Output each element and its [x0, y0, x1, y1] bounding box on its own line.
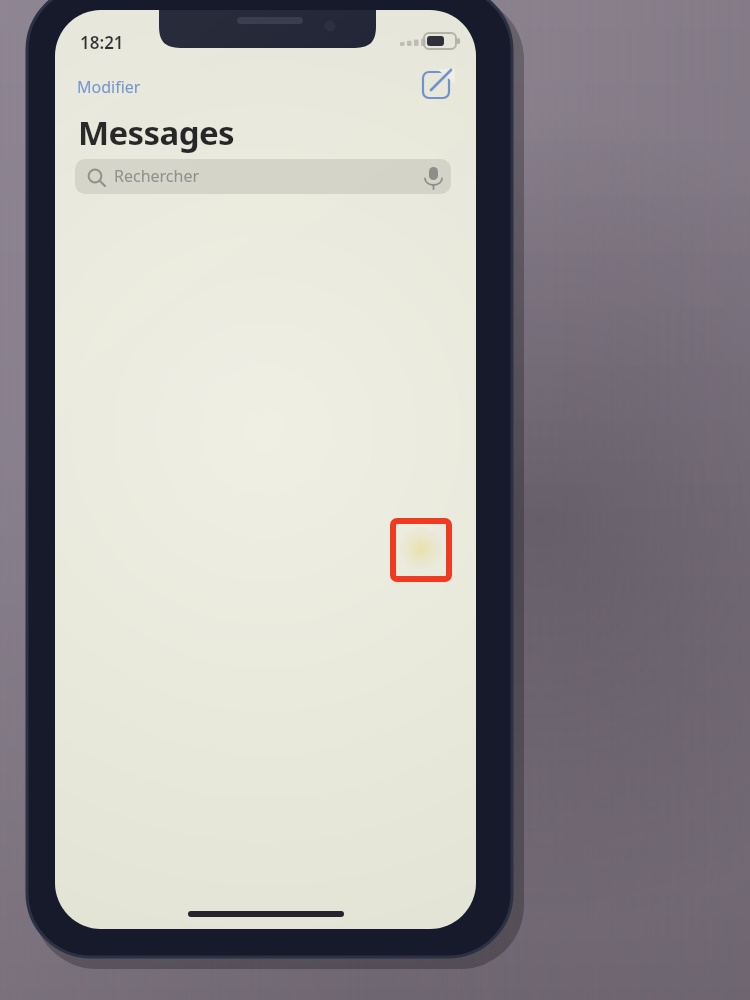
button[interactable]: Nouveau message	[418, 67, 454, 103]
button[interactable]	[73, 72, 151, 102]
button[interactable]	[75, 159, 451, 194]
